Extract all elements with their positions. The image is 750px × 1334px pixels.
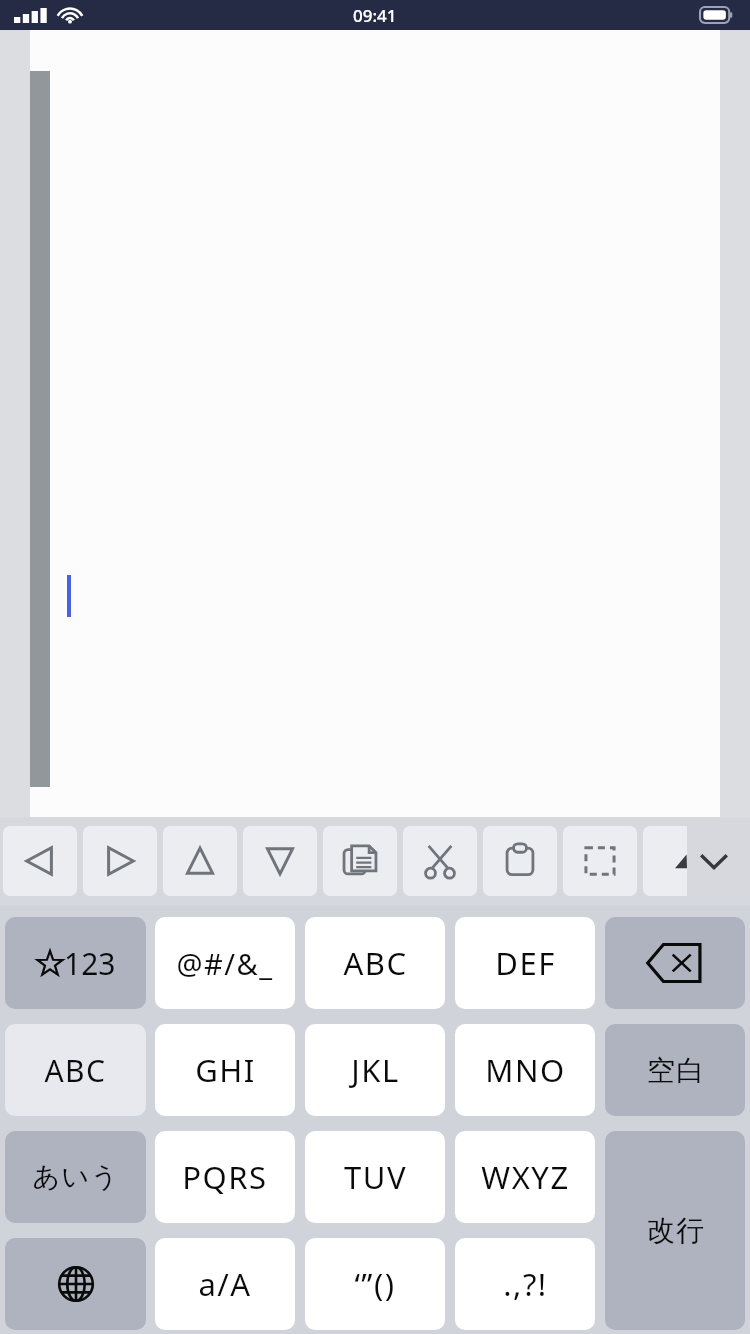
button[interactable]: Copy [323, 826, 397, 896]
staticText: GHI [195, 1049, 256, 1091]
staticText: DEF [495, 942, 556, 984]
button[interactable]: Previous [3, 826, 77, 896]
button[interactable]: TUV [305, 1131, 445, 1223]
staticText: WXYZ [481, 1156, 570, 1198]
button[interactable]: DEF [455, 917, 595, 1009]
button[interactable]: ABC [5, 1024, 146, 1116]
staticText: ‘”() [354, 1263, 396, 1305]
button[interactable]: @#/&_ [155, 917, 295, 1009]
button[interactable]: 123 [5, 917, 146, 1009]
button[interactable]: Move up [163, 826, 237, 896]
button[interactable]: GHI [155, 1024, 295, 1116]
button[interactable]: Backspace [605, 917, 745, 1009]
button[interactable]: Hide keyboard [678, 817, 750, 905]
staticText: .,?! [503, 1263, 548, 1305]
other: Switch keyboard [53, 1261, 99, 1307]
button[interactable]: JKL [305, 1024, 445, 1116]
button[interactable]: PQRS [155, 1131, 295, 1223]
staticText: 09:41 [353, 4, 397, 27]
staticText: @#/&_ [176, 944, 274, 983]
other: Backspace [644, 940, 706, 986]
staticText: 123 [64, 943, 116, 984]
staticText: a/A [198, 1263, 252, 1305]
button[interactable]: MNO [455, 1024, 595, 1116]
button[interactable]: a/A [155, 1238, 295, 1330]
button[interactable]: Paste [483, 826, 557, 896]
button[interactable]: Select [563, 826, 637, 896]
staticText: あいう [32, 1160, 120, 1194]
button[interactable]: Move down [243, 826, 317, 896]
staticText: ABC [343, 942, 408, 984]
staticText: TUV [344, 1156, 407, 1198]
staticText: 改行 [646, 1213, 705, 1248]
button[interactable]: .,?! [455, 1238, 595, 1330]
button[interactable]: WXYZ [455, 1131, 595, 1223]
button[interactable]: あいう [5, 1131, 146, 1223]
button[interactable]: 改行 [605, 1131, 745, 1330]
button[interactable]: ABC [305, 917, 445, 1009]
staticText: MNO [485, 1049, 566, 1091]
button[interactable]: Next [83, 826, 157, 896]
button[interactable]: More actions [643, 826, 687, 896]
staticText: ABC [44, 1050, 107, 1091]
button[interactable]: ‘”() [305, 1238, 445, 1330]
button[interactable]: Switch keyboard [5, 1238, 146, 1330]
staticText: 空白 [646, 1053, 705, 1088]
button[interactable]: 空白 [605, 1024, 745, 1116]
staticText: PQRS [182, 1156, 268, 1198]
staticText: JKL [351, 1049, 400, 1091]
button[interactable]: Cut [403, 826, 477, 896]
